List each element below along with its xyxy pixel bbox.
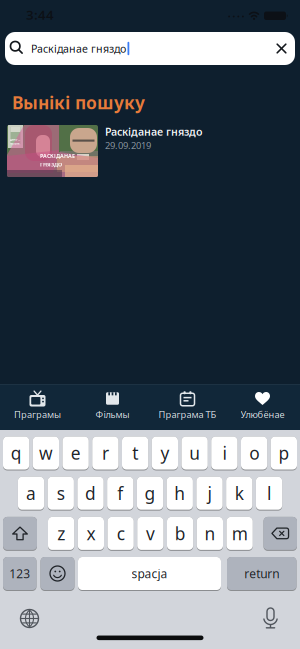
button[interactable]: Clear search text <box>271 38 292 59</box>
staticText: f <box>117 482 123 505</box>
button[interactable]: Delete <box>263 517 297 551</box>
staticText: y <box>160 441 169 464</box>
staticText: o <box>249 441 259 464</box>
button[interactable]: l <box>256 477 282 511</box>
staticText: d <box>85 482 96 505</box>
staticText: Фільмы <box>95 408 129 421</box>
staticText: Раскіданае гняздо <box>105 124 203 139</box>
staticText: Улюбёнае <box>240 408 284 421</box>
button[interactable]: j <box>196 477 223 511</box>
button[interactable]: Next keyboard <box>20 609 39 628</box>
button[interactable]: k <box>226 477 252 511</box>
staticText: e <box>71 441 81 464</box>
staticText: 3:44 <box>26 6 54 23</box>
staticText: q <box>11 441 22 464</box>
staticText: return <box>244 565 279 581</box>
staticText: r <box>102 441 109 464</box>
button[interactable]: i <box>211 436 237 470</box>
button[interactable]: t <box>122 436 148 470</box>
button[interactable]: h <box>167 477 193 511</box>
button[interactable]: q <box>3 436 29 470</box>
staticText: Вынікі пошуку <box>12 91 145 114</box>
button[interactable]: x <box>78 517 104 551</box>
button[interactable]: Shift <box>3 517 37 551</box>
staticText: 123 <box>9 565 30 581</box>
staticText: ДАКУМЕНТАЛЬНЫ <box>10 138 20 141</box>
staticText: spacja <box>131 565 167 581</box>
staticText: s <box>57 482 65 505</box>
button[interactable]: a <box>18 477 44 511</box>
staticText: p <box>278 441 289 464</box>
button[interactable]: v <box>137 517 163 551</box>
staticText: k <box>235 482 244 505</box>
button[interactable]: f <box>107 477 133 511</box>
staticText: b <box>175 522 186 545</box>
button[interactable]: d <box>77 477 104 511</box>
button[interactable]: Праграмы <box>0 384 75 430</box>
staticText: m <box>232 522 248 545</box>
staticText: t <box>132 441 138 464</box>
staticText: h <box>174 482 185 505</box>
staticText: n <box>204 522 215 545</box>
button[interactable]: Space <box>78 557 221 591</box>
staticText: j <box>207 482 211 505</box>
button[interactable]: Dictation <box>261 608 280 629</box>
button[interactable]: n <box>197 517 223 551</box>
button[interactable]: r <box>92 436 118 470</box>
button[interactable]: e <box>62 436 89 470</box>
button[interactable]: Return <box>227 557 296 591</box>
button[interactable]: p <box>271 436 297 470</box>
staticText: Праграмы <box>14 408 61 421</box>
staticText: a <box>26 482 36 505</box>
button[interactable]: w <box>33 436 59 470</box>
staticText: Раскіданае гняздо <box>31 41 126 56</box>
button[interactable]: Emoji <box>40 557 74 591</box>
button[interactable]: Numbers <box>3 557 36 591</box>
staticText: c <box>117 522 125 545</box>
button[interactable]: Праграма ТБ <box>150 384 225 430</box>
button[interactable]: Search field <box>5 32 295 65</box>
staticText: l <box>267 482 271 505</box>
button[interactable]: g <box>137 477 163 511</box>
staticText: 29.09.2019 <box>105 139 151 152</box>
button[interactable]: b <box>167 517 193 551</box>
staticText: w <box>39 441 53 464</box>
button[interactable]: m <box>226 517 253 551</box>
button[interactable]: ДАКУМЕНТАЛЬНЫ <box>0 118 300 184</box>
button[interactable]: y <box>152 436 178 470</box>
staticText: x <box>86 522 95 545</box>
staticText: g <box>144 482 155 505</box>
button[interactable]: Фільмы <box>75 384 150 430</box>
staticText: i <box>222 441 226 464</box>
button[interactable]: s <box>48 477 74 511</box>
staticText: v <box>146 522 155 545</box>
button[interactable]: Улюбёнае <box>225 384 300 430</box>
button[interactable]: u <box>181 436 208 470</box>
staticText: u <box>189 441 200 464</box>
button[interactable]: z <box>48 517 74 551</box>
button[interactable]: c <box>107 517 134 551</box>
staticText: РАСКІДАНАЕ <box>40 152 75 160</box>
staticText: ФІЛЬМ <box>10 142 20 145</box>
button[interactable]: o <box>241 436 267 470</box>
staticText: z <box>57 522 65 545</box>
staticText: Праграма ТБ <box>158 408 216 421</box>
staticText: ГНЯЗДО <box>40 161 62 168</box>
